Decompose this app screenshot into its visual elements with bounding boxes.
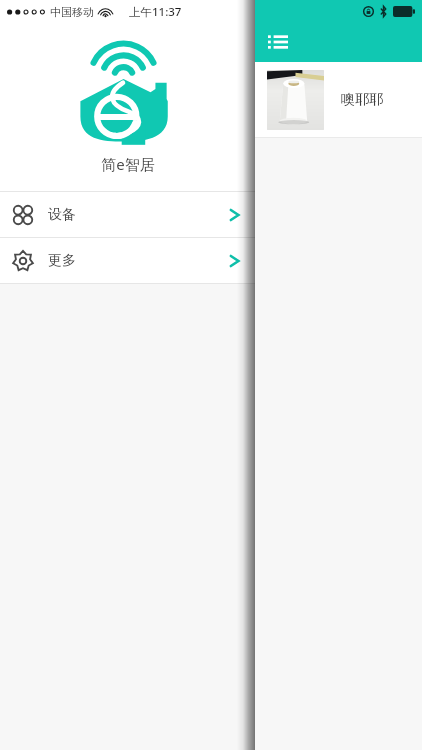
button[interactable]: 更多 <box>0 238 255 283</box>
button[interactable]: 噢耶耶 <box>255 62 422 137</box>
staticText: 更多 <box>48 252 76 270</box>
staticText: 噢耶耶 <box>341 91 383 109</box>
button[interactable]: Menu <box>263 27 293 57</box>
staticText: 简e智居 <box>101 154 155 174</box>
staticText: 设备 <box>48 206 76 224</box>
button[interactable]: 设备 <box>0 192 255 237</box>
staticText: 中国移动 <box>50 5 94 19</box>
staticText: 上午11:37 <box>129 4 182 20</box>
